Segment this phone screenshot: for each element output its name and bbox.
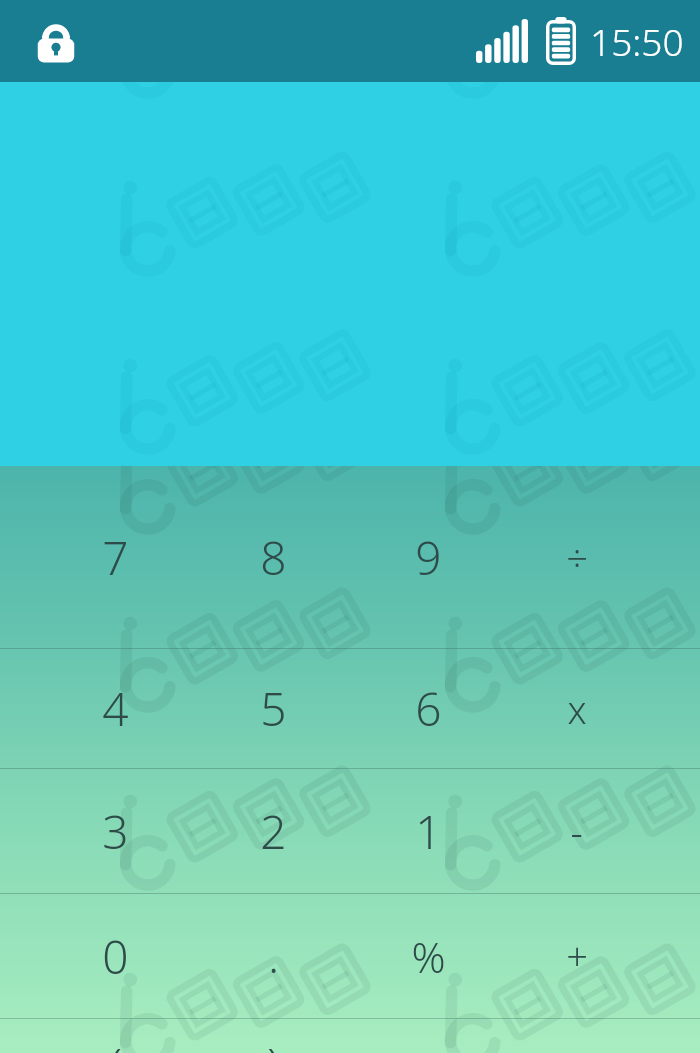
button[interactable]: 0 xyxy=(0,894,194,1018)
staticText: ( xyxy=(109,1033,122,1053)
button[interactable]: 4 xyxy=(0,649,194,768)
staticText: 2 xyxy=(260,800,287,863)
button[interactable]: key xyxy=(350,1019,502,1053)
staticText: ) xyxy=(267,1033,280,1053)
button[interactable]: ) xyxy=(194,1019,350,1053)
staticText: - xyxy=(570,805,583,857)
button[interactable]: 8 xyxy=(194,466,350,648)
button[interactable]: 5 xyxy=(194,649,350,768)
staticText: % xyxy=(411,928,446,985)
button[interactable]: key xyxy=(502,1019,700,1053)
staticText: x xyxy=(567,683,587,735)
button[interactable]: . xyxy=(194,894,350,1018)
button[interactable]: 1 xyxy=(350,769,502,893)
staticText: 9 xyxy=(415,526,442,589)
button[interactable]: 2 xyxy=(194,769,350,893)
button[interactable]: ÷ xyxy=(502,466,700,648)
staticText: 7 xyxy=(102,526,129,589)
button[interactable]: % xyxy=(350,894,502,1018)
button[interactable]: x xyxy=(502,649,700,768)
button[interactable]: Screen locked xyxy=(32,17,80,65)
staticText: ÷ xyxy=(566,531,588,583)
staticText: 15:50 xyxy=(590,16,684,66)
staticText: 4 xyxy=(102,677,129,740)
button[interactable]: - xyxy=(502,769,700,893)
button[interactable]: + xyxy=(502,894,700,1018)
button[interactable]: 7 xyxy=(0,466,194,648)
button[interactable]: 9 xyxy=(350,466,502,648)
staticText: 8 xyxy=(260,526,287,589)
staticText: + xyxy=(566,930,588,982)
button[interactable]: 6 xyxy=(350,649,502,768)
button[interactable]: ( xyxy=(0,1019,194,1053)
button[interactable]: 3 xyxy=(0,769,194,893)
staticText: 6 xyxy=(415,677,442,740)
staticText: . xyxy=(268,926,279,986)
staticText: 5 xyxy=(260,677,287,740)
staticText: 1 xyxy=(415,800,442,863)
staticText: 3 xyxy=(102,800,129,863)
staticText: 0 xyxy=(102,925,129,988)
